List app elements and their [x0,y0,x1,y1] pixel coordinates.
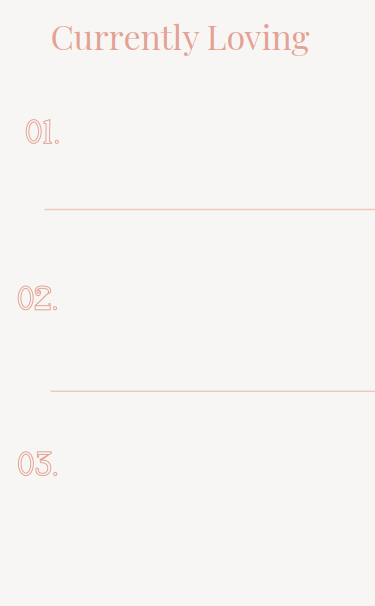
button[interactable]: Entry 2 [0,272,375,428]
button[interactable]: Entry 3 [0,438,375,594]
staticText: Currently Loving [50,13,309,58]
button[interactable]: Entry 1 [0,106,375,262]
